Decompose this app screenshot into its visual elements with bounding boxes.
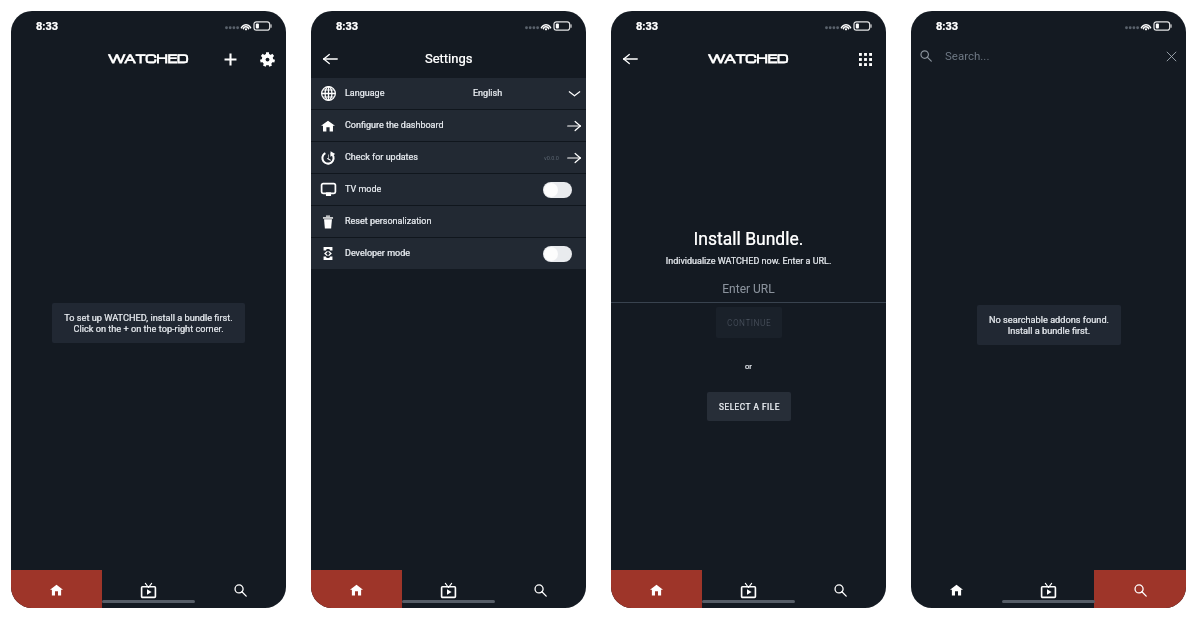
staticText: WATCHED <box>108 51 189 66</box>
staticText: Search... <box>945 49 990 62</box>
button[interactable]: Search <box>1094 570 1186 608</box>
button[interactable]: Home <box>911 570 1002 608</box>
staticText: English <box>473 88 503 99</box>
button[interactable]: Back <box>617 46 643 72</box>
button[interactable]: Home <box>11 570 102 608</box>
staticText: Settings <box>425 51 473 66</box>
staticText: Configure the dashboard <box>345 120 444 131</box>
button[interactable]: SELECT A FILE <box>707 392 791 421</box>
button[interactable]: Search <box>794 570 886 608</box>
button[interactable]: Search <box>494 570 586 608</box>
button[interactable]: Developer mode <box>311 238 586 269</box>
button[interactable]: Toggle <box>543 246 572 262</box>
button[interactable]: Home <box>611 570 702 608</box>
staticText: v0.0.0 <box>544 155 559 161</box>
button[interactable]: Language <box>311 78 586 109</box>
staticText: Install Bundle. <box>611 229 886 250</box>
staticText: SELECT A FILE <box>719 402 780 412</box>
staticText: Developer mode <box>345 248 410 259</box>
button[interactable]: Settings <box>253 45 281 73</box>
button[interactable]: Configure the dashboard <box>311 110 586 141</box>
staticText: Reset personalization <box>345 216 432 227</box>
button[interactable]: Live TV <box>1002 570 1094 608</box>
button[interactable]: Apps <box>852 46 878 72</box>
button[interactable]: TV mode <box>311 174 586 205</box>
button[interactable]: CONTINUE <box>716 307 782 338</box>
staticText: CONTINUE <box>727 318 772 328</box>
staticText: or <box>611 362 886 371</box>
staticText: Enter URL <box>611 282 886 296</box>
button[interactable]: Clear search <box>1160 45 1182 67</box>
staticText: 8:33 <box>636 20 659 33</box>
button[interactable]: Check for updates <box>311 142 586 173</box>
staticText: 8:33 <box>936 20 959 33</box>
staticText: TV mode <box>345 184 382 195</box>
button[interactable]: Add bundle <box>216 45 244 73</box>
button[interactable]: Reset personalization <box>311 206 586 237</box>
button[interactable]: Home <box>311 570 402 608</box>
button[interactable]: Live TV <box>102 570 194 608</box>
button[interactable]: Live TV <box>402 570 494 608</box>
staticText: Language <box>345 88 385 99</box>
staticText: Check for updates <box>345 152 418 163</box>
staticText: 8:33 <box>36 20 59 33</box>
button[interactable]: Back <box>317 46 343 72</box>
button[interactable]: Toggle <box>543 182 572 198</box>
staticText: No searchable addons found. Install a bu… <box>989 314 1109 336</box>
staticText: 8:33 <box>336 20 359 33</box>
button[interactable]: Search <box>194 570 286 608</box>
staticText: WATCHED <box>708 51 789 66</box>
staticText: Individualize WATCHED now. Enter a URL. <box>611 256 886 267</box>
staticText: To set up WATCHED, install a bundle firs… <box>64 312 233 334</box>
button[interactable]: Live TV <box>702 570 794 608</box>
